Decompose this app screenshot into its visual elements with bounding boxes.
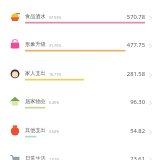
staticText: 1.57% — [49, 157, 60, 160]
staticText: 其他支出 — [25, 127, 46, 134]
staticText: 食品酒水 — [25, 13, 46, 20]
staticText: 281.58 — [100, 70, 145, 78]
other: Details — [148, 100, 154, 106]
staticText: 23.61 — [100, 155, 145, 160]
other: Details — [148, 129, 154, 135]
button[interactable]: 家人支出 — [0, 57, 160, 85]
staticText: 31.75% — [49, 43, 62, 48]
button[interactable]: 居家物业 — [0, 85, 160, 113]
staticText: 家人支出 — [25, 70, 46, 77]
staticText: 居家物业 — [25, 98, 46, 105]
staticText: 54.82 — [100, 127, 145, 135]
other: Details — [148, 72, 154, 78]
staticText: 日常生活 — [25, 155, 46, 160]
staticText: 37.93% — [49, 15, 62, 20]
button[interactable]: 形象升级 — [0, 28, 160, 56]
button[interactable]: 日常生活 — [0, 142, 160, 160]
staticText: 570.78 — [100, 13, 145, 21]
other: Details — [148, 43, 154, 49]
button[interactable]: 其他支出 — [0, 114, 160, 142]
staticText: 477.75 — [100, 41, 145, 49]
staticText: 6.40% — [49, 100, 60, 105]
staticText: 形象升级 — [25, 41, 46, 48]
staticText: 3.64% — [49, 129, 60, 134]
staticText: 18.71% — [49, 72, 62, 77]
button[interactable]: 食品酒水 — [0, 0, 160, 28]
other: Details — [148, 15, 154, 21]
staticText: 96.30 — [100, 98, 145, 106]
other: Details — [148, 157, 154, 160]
